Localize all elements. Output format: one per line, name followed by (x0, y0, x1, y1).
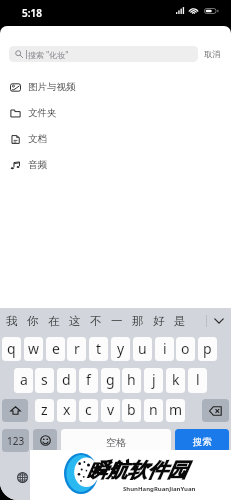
button[interactable]: 我 (1, 308, 22, 333)
staticText: 那 (132, 314, 144, 328)
staticText: 5:18 (22, 6, 42, 20)
staticText: 瞬航软件园 (87, 458, 187, 483)
staticText: b (127, 400, 136, 419)
staticText: m (169, 400, 183, 419)
staticText: 图片与视频 (28, 81, 76, 93)
staticText: a (20, 370, 28, 389)
button[interactable]: q (2, 337, 21, 361)
staticText: w (28, 339, 40, 358)
staticText: 一 (111, 314, 123, 328)
staticText: 不 (90, 314, 102, 328)
button[interactable]: k (166, 368, 185, 393)
button[interactable]: g (101, 368, 120, 393)
button[interactable]: Delete (202, 399, 229, 422)
staticText: 空格 (106, 436, 126, 449)
button[interactable]: w (24, 337, 43, 361)
staticText: q (7, 339, 16, 358)
button[interactable]: Switch keyboard (17, 472, 28, 483)
button[interactable]: d (57, 368, 76, 393)
button[interactable]: y (111, 337, 130, 361)
button[interactable]: z (35, 399, 54, 422)
button[interactable]: u (133, 337, 152, 361)
staticText: u (138, 339, 147, 358)
staticText: 在 (48, 314, 60, 328)
staticText: k (172, 370, 180, 389)
button[interactable]: 那 (127, 308, 148, 333)
button[interactable]: n (144, 399, 163, 422)
button[interactable]: 一 (106, 308, 127, 333)
staticText: 搜索 (193, 436, 212, 448)
button[interactable]: p (198, 337, 217, 361)
staticText: h (127, 370, 136, 389)
staticText: 我 (6, 314, 18, 328)
button[interactable]: 好 (148, 308, 169, 333)
staticText: c (85, 400, 92, 419)
button[interactable]: 文档 (0, 126, 231, 152)
button[interactable]: r (67, 337, 86, 361)
button[interactable]: 搜索 "化妆" (9, 46, 198, 62)
button[interactable]: 不 (85, 308, 106, 333)
button[interactable]: s (35, 368, 54, 393)
button[interactable]: 取消 (204, 46, 221, 62)
button[interactable]: 图片与视频 (0, 74, 231, 100)
button[interactable]: Shift (2, 399, 28, 422)
staticText: ShunHangRuanJianYuan (123, 485, 196, 493)
button[interactable]: m (166, 399, 185, 422)
staticText: v (107, 400, 115, 419)
staticText: y (117, 339, 125, 358)
staticText: 音频 (28, 159, 47, 171)
staticText: 是 (174, 314, 186, 328)
button[interactable]: c (79, 399, 98, 422)
staticText: n (149, 400, 158, 419)
button[interactable]: 是 (169, 308, 190, 333)
button[interactable]: j (144, 368, 163, 393)
button[interactable]: 在 (43, 308, 64, 333)
button[interactable]: 这 (64, 308, 85, 333)
button[interactable]: 文件夹 (0, 100, 231, 126)
button[interactable]: a (14, 368, 33, 393)
staticText: o (181, 339, 190, 358)
button[interactable]: e (46, 337, 65, 361)
staticText: 这 (69, 314, 81, 328)
staticText: i (163, 339, 167, 358)
staticText: j (152, 370, 156, 389)
staticText: d (62, 370, 71, 389)
staticText: 文件夹 (28, 107, 57, 119)
button[interactable]: 搜索 (175, 429, 229, 452)
staticText: g (106, 370, 115, 389)
button[interactable]: 音频 (0, 152, 231, 178)
staticText: t (96, 339, 102, 358)
staticText: e (52, 339, 60, 358)
button[interactable]: x (57, 399, 76, 422)
staticText: 取消 (204, 49, 221, 59)
button[interactable]: 空格 (61, 429, 171, 452)
staticText: 文档 (28, 133, 47, 145)
staticText: z (41, 400, 48, 419)
staticText: 123 (7, 434, 25, 448)
staticText: 你 (27, 314, 39, 328)
staticText: l (196, 370, 200, 389)
button[interactable]: More candidates (207, 308, 231, 333)
staticText: 好 (153, 314, 165, 328)
staticText: s (41, 370, 48, 389)
staticText: x (63, 400, 71, 419)
staticText: 搜索 "化妆" (28, 49, 69, 60)
button[interactable]: l (188, 368, 207, 393)
button[interactable]: b (122, 399, 141, 422)
staticText: f (86, 370, 91, 389)
button[interactable]: Emoji (33, 429, 57, 452)
button[interactable]: o (176, 337, 195, 361)
button[interactable]: v (101, 399, 120, 422)
button[interactable]: i (155, 337, 174, 361)
button[interactable]: h (122, 368, 141, 393)
button[interactable]: 你 (22, 308, 43, 333)
staticText: p (203, 339, 212, 358)
button[interactable]: t (89, 337, 108, 361)
button[interactable]: 123 (2, 429, 29, 452)
button[interactable]: f (79, 368, 98, 393)
staticText: r (74, 339, 80, 358)
